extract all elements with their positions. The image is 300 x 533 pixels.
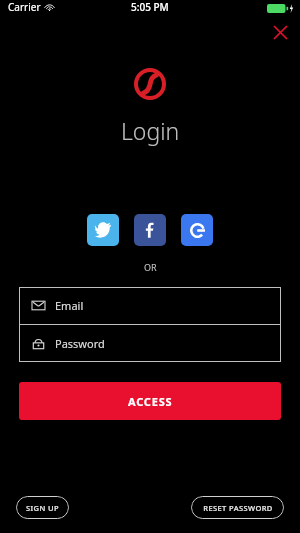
staticText: ACCESS: [128, 394, 173, 409]
staticText: OR: [144, 261, 157, 273]
button[interactable]: Password: [19, 325, 281, 362]
staticText: Email: [55, 298, 84, 313]
button[interactable]: Sign in with Twitter: [87, 214, 119, 246]
staticText: Password: [55, 336, 105, 351]
button[interactable]: Sign in with Facebook: [134, 214, 166, 246]
staticText: 5:05 PM: [131, 0, 169, 14]
staticText: Carrier: [8, 0, 41, 14]
button[interactable]: Close: [266, 18, 294, 46]
button[interactable]: RESET PASSWORD: [191, 496, 284, 519]
staticText: SIGN UP: [26, 503, 59, 513]
staticText: Login: [121, 115, 180, 146]
button[interactable]: Email: [19, 287, 281, 324]
button[interactable]: ACCESS: [19, 382, 281, 420]
button[interactable]: Sign in with Google: [181, 214, 213, 246]
button[interactable]: SIGN UP: [16, 496, 69, 519]
staticText: RESET PASSWORD: [203, 503, 273, 513]
